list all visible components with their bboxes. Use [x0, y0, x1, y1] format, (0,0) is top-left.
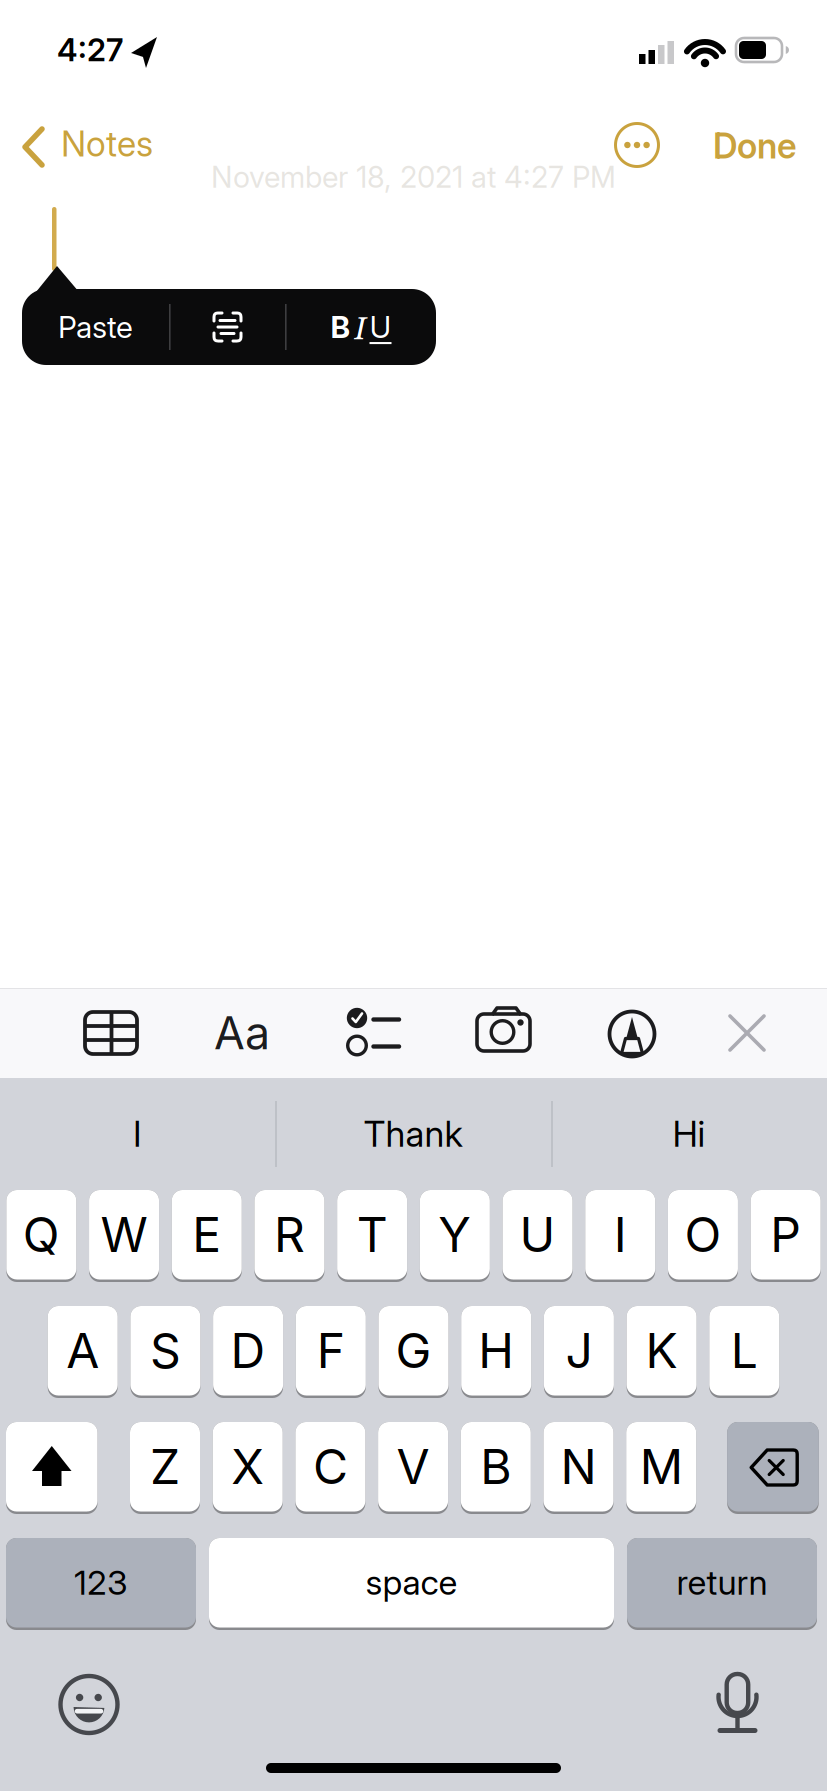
- staticText: Notes: [61, 123, 153, 165]
- staticText: W: [101, 1205, 148, 1264]
- staticText: A: [66, 1321, 99, 1380]
- staticText: D: [231, 1321, 266, 1380]
- button[interactable]: M: [626, 1422, 696, 1514]
- button[interactable]: X: [213, 1422, 283, 1514]
- staticText: I: [614, 1205, 627, 1264]
- staticText: O: [684, 1205, 721, 1264]
- button[interactable]: A: [48, 1306, 118, 1398]
- staticText: J: [565, 1321, 592, 1380]
- button[interactable]: More: [613, 121, 661, 169]
- button[interactable]: Done: [690, 122, 820, 170]
- button[interactable]: space: [209, 1538, 614, 1630]
- button[interactable]: B: [461, 1422, 531, 1514]
- staticText: I: [133, 1113, 142, 1155]
- button[interactable]: O: [668, 1190, 738, 1282]
- button[interactable]: F: [296, 1306, 366, 1398]
- staticText: M: [640, 1437, 683, 1496]
- button[interactable]: P: [751, 1190, 821, 1282]
- button[interactable]: Dismiss Keyboard: [715, 1001, 779, 1065]
- button[interactable]: Delete: [727, 1422, 819, 1514]
- button[interactable]: T: [337, 1190, 407, 1282]
- staticText: T: [357, 1205, 388, 1264]
- button[interactable]: Z: [130, 1422, 200, 1514]
- staticText: P: [770, 1205, 801, 1264]
- button[interactable]: Paste: [22, 289, 169, 365]
- staticText: November 18, 2021 at 4:27 PM: [211, 159, 616, 195]
- button[interactable]: Hi: [551, 1078, 827, 1190]
- button[interactable]: I: [0, 1078, 275, 1190]
- button[interactable]: K: [627, 1306, 697, 1398]
- staticText: F: [317, 1321, 345, 1380]
- staticText: Y: [438, 1205, 471, 1264]
- button[interactable]: Format: [197, 1001, 287, 1065]
- button[interactable]: C: [295, 1422, 365, 1514]
- button[interactable]: S: [130, 1306, 200, 1398]
- button[interactable]: Q: [6, 1190, 76, 1282]
- staticText: Done: [713, 125, 797, 167]
- button[interactable]: H: [461, 1306, 531, 1398]
- button[interactable]: Emoji: [57, 1672, 121, 1736]
- staticText: H: [478, 1321, 514, 1380]
- staticText: V: [397, 1437, 430, 1496]
- button[interactable]: Scan Text: [170, 289, 285, 365]
- button[interactable]: J: [544, 1306, 614, 1398]
- button[interactable]: E: [172, 1190, 242, 1282]
- staticText: Aa: [214, 1006, 270, 1060]
- staticText: K: [646, 1321, 678, 1380]
- staticText: S: [150, 1321, 181, 1380]
- button[interactable]: Table: [79, 1001, 143, 1065]
- button[interactable]: W: [89, 1190, 159, 1282]
- button[interactable]: D: [213, 1306, 283, 1398]
- staticText: Thank: [363, 1113, 462, 1155]
- button[interactable]: Dictate: [705, 1670, 769, 1734]
- button[interactable]: R: [254, 1190, 324, 1282]
- staticText: B: [480, 1437, 511, 1496]
- staticText: I: [354, 306, 365, 348]
- button[interactable]: Thank: [275, 1078, 551, 1190]
- button[interactable]: I: [585, 1190, 655, 1282]
- button[interactable]: Notes: [18, 123, 178, 171]
- button[interactable]: Checklist: [340, 1001, 404, 1065]
- staticText: N: [560, 1437, 596, 1496]
- staticText: Hi: [672, 1113, 705, 1155]
- button[interactable]: N: [543, 1422, 613, 1514]
- staticText: U: [519, 1205, 555, 1264]
- staticText: C: [313, 1437, 348, 1496]
- button[interactable]: Shift: [6, 1422, 97, 1514]
- button[interactable]: Camera: [471, 1001, 535, 1065]
- staticText: 4:27: [57, 31, 123, 69]
- staticText: return: [676, 1562, 767, 1603]
- staticText: 123: [74, 1562, 128, 1603]
- button[interactable]: Format: [286, 289, 436, 365]
- staticText: G: [395, 1321, 431, 1380]
- button[interactable]: U: [503, 1190, 573, 1282]
- staticText: B: [330, 309, 350, 345]
- staticText: R: [274, 1205, 305, 1264]
- staticText: E: [192, 1205, 221, 1264]
- button[interactable]: Y: [420, 1190, 490, 1282]
- button[interactable]: Return: [627, 1538, 817, 1630]
- staticText: Z: [150, 1437, 180, 1496]
- button[interactable]: G: [378, 1306, 448, 1398]
- staticText: L: [731, 1321, 758, 1380]
- button[interactable]: Numbers: [6, 1538, 196, 1630]
- staticText: space: [365, 1562, 457, 1603]
- staticText: U: [369, 309, 391, 345]
- button[interactable]: V: [378, 1422, 448, 1514]
- staticText: Paste: [58, 309, 133, 345]
- button[interactable]: Markup: [600, 1001, 664, 1065]
- staticText: Q: [23, 1205, 60, 1264]
- button[interactable]: L: [709, 1306, 779, 1398]
- staticText: X: [231, 1437, 264, 1496]
